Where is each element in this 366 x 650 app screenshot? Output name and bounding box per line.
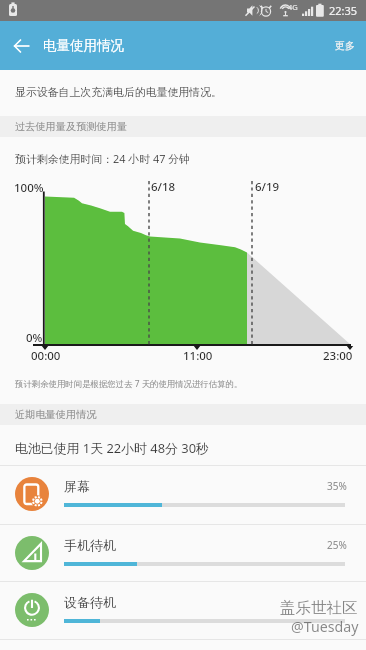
staticText: 25%	[327, 538, 347, 552]
staticText: 设备待机	[64, 594, 116, 610]
staticText: 近期电量使用情况	[15, 408, 97, 421]
staticText: 盖乐世社区	[280, 598, 358, 618]
staticText: 过去使用量及预测使用量	[15, 120, 128, 133]
button[interactable]: 手机待机	[0, 524, 366, 583]
staticText: 4G	[288, 2, 298, 12]
staticText: 00:00	[31, 348, 61, 364]
staticText: 显示设备自上次充满电后的电量使用情况。	[15, 86, 222, 100]
staticText: 35%	[327, 479, 347, 493]
button[interactable]: 更多	[321, 21, 366, 70]
staticText: 电量使用情况	[43, 37, 124, 54]
staticText: 电池已使用 1天 22小时 48分 30秒	[15, 439, 209, 457]
button[interactable]: 屏幕	[0, 465, 366, 524]
staticText: 预计剩余使用时间是根据您过去 7 天的使用情况进行估算的。	[15, 378, 243, 389]
button[interactable]: Back	[0, 24, 44, 68]
staticText: 更多	[335, 39, 355, 52]
staticText: 11:00	[183, 348, 213, 364]
staticText: 屏幕	[64, 478, 90, 494]
staticText: 6/18	[151, 179, 176, 195]
staticText: 6/19	[255, 179, 280, 195]
staticText: 预计剩余使用时间：24 小时 47 分钟	[15, 151, 190, 166]
staticText: 100%	[14, 180, 44, 196]
staticText: @Tuesday	[291, 617, 359, 636]
staticText: 手机待机	[64, 537, 116, 553]
staticText: 23:00	[323, 348, 353, 364]
button[interactable]: 设备待机	[0, 581, 366, 639]
staticText: 22:35	[329, 3, 358, 18]
staticText: 0%	[26, 330, 43, 346]
